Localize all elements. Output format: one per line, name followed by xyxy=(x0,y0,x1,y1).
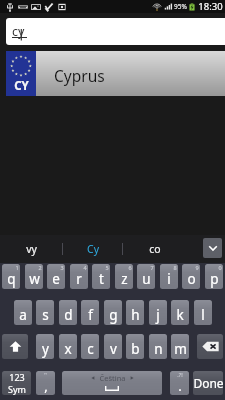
button[interactable]: 5 xyxy=(92,264,110,289)
button[interactable]: j xyxy=(149,300,167,325)
button[interactable]: 2 xyxy=(25,264,43,289)
staticText: e xyxy=(52,270,60,288)
button[interactable]: 6 xyxy=(115,264,133,289)
button[interactable]: b xyxy=(126,334,144,359)
staticText: 18:30 xyxy=(198,0,223,13)
staticText: c xyxy=(87,340,94,358)
staticText: y xyxy=(42,340,49,358)
button[interactable]: k xyxy=(171,300,189,325)
button[interactable]: c xyxy=(81,334,99,359)
staticText: m xyxy=(174,340,187,358)
staticText: 3 xyxy=(60,264,64,271)
button[interactable]: n xyxy=(149,334,167,359)
staticText: g xyxy=(109,306,118,324)
button[interactable]: Shift xyxy=(2,334,28,359)
staticText: 9 xyxy=(195,264,199,271)
button[interactable]: d xyxy=(59,300,77,325)
staticText: 1 xyxy=(15,264,19,271)
button[interactable]: Period xyxy=(170,371,189,395)
staticText: p xyxy=(210,270,219,288)
button[interactable]: 8 xyxy=(160,264,178,289)
staticText: a xyxy=(19,306,27,324)
staticText: f xyxy=(88,306,93,324)
staticText: w xyxy=(29,270,40,288)
staticText: vy xyxy=(26,242,37,256)
staticText: Cyprus xyxy=(54,65,105,86)
button[interactable]: co xyxy=(123,235,187,263)
staticText: 123 xyxy=(9,371,25,383)
staticText: '' xyxy=(44,371,47,378)
button[interactable]: vy xyxy=(0,235,62,263)
button[interactable]: 9 xyxy=(182,264,200,289)
staticText: Cy xyxy=(87,242,99,256)
staticText: x xyxy=(64,340,72,358)
staticText: 6 xyxy=(128,264,132,271)
button[interactable]: cy xyxy=(6,18,225,45)
button[interactable]: Done xyxy=(193,371,223,395)
staticText: q xyxy=(7,270,16,288)
staticText: d xyxy=(64,306,73,324)
staticText: 5 xyxy=(105,264,109,271)
staticText: t xyxy=(99,270,104,288)
button[interactable]: 7 xyxy=(137,264,155,289)
button[interactable]: v xyxy=(104,334,122,359)
staticText: .?! xyxy=(177,371,183,378)
staticText: , xyxy=(44,377,48,395)
staticText: i xyxy=(167,270,171,288)
button[interactable]: 123 xyxy=(2,371,31,395)
staticText: CY xyxy=(14,78,29,94)
button[interactable]: Space xyxy=(62,371,162,395)
staticText: Sym xyxy=(8,383,26,395)
button[interactable]: 0 xyxy=(205,264,223,289)
staticText: co xyxy=(149,242,161,256)
button[interactable]: f xyxy=(81,300,99,325)
button[interactable]: 4 xyxy=(70,264,88,289)
staticText: Čeština xyxy=(99,373,126,383)
staticText: Done xyxy=(193,375,223,391)
staticText: cy xyxy=(12,23,25,40)
staticText: 4 xyxy=(83,264,87,271)
button[interactable]: Cy xyxy=(63,235,122,263)
staticText: u xyxy=(142,270,151,288)
staticText: z xyxy=(121,270,128,288)
button[interactable]: h xyxy=(126,300,144,325)
button[interactable]: s xyxy=(36,300,54,325)
staticText: o xyxy=(187,270,196,288)
button[interactable]: g xyxy=(104,300,122,325)
staticText: 8 xyxy=(173,264,177,271)
button[interactable]: Comma xyxy=(36,371,55,395)
button[interactable]: Backspace xyxy=(197,334,223,359)
button[interactable]: x xyxy=(59,334,77,359)
staticText: l xyxy=(201,306,205,324)
staticText: b xyxy=(131,340,140,358)
staticText: h xyxy=(131,306,140,324)
staticText: 7 xyxy=(150,264,154,271)
button[interactable]: m xyxy=(171,334,189,359)
button[interactable]: y xyxy=(36,334,54,359)
staticText: k xyxy=(176,306,184,324)
staticText: s xyxy=(42,306,49,324)
button[interactable]: a xyxy=(14,300,32,325)
staticText: r xyxy=(76,270,82,288)
staticText: j xyxy=(156,306,160,324)
staticText: v xyxy=(110,340,117,358)
button[interactable]: CY xyxy=(6,51,225,96)
button[interactable]: 3 xyxy=(47,264,65,289)
button[interactable]: 1 xyxy=(2,264,20,289)
button[interactable]: l xyxy=(194,300,212,325)
staticText: n xyxy=(154,340,163,358)
staticText: 2 xyxy=(38,264,42,271)
staticText: . xyxy=(178,377,182,395)
staticText: 0 xyxy=(218,264,222,271)
staticText: 95% xyxy=(174,2,187,11)
button[interactable]: Show more suggestions xyxy=(203,238,222,258)
